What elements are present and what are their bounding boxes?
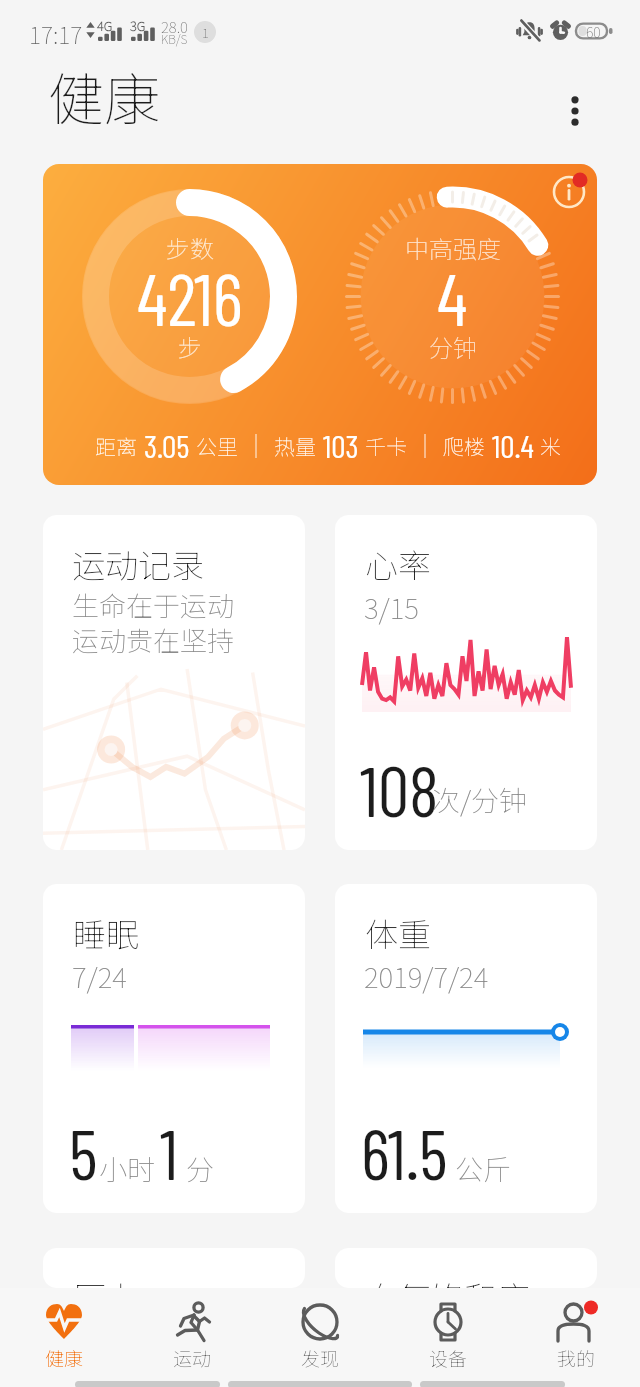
staticText: 次/分钟 bbox=[432, 779, 528, 820]
staticText: KB/S bbox=[161, 30, 188, 47]
staticText: 5 bbox=[69, 1110, 98, 1194]
staticText: 分钟 bbox=[429, 329, 477, 364]
staticText: 3.05 bbox=[144, 426, 190, 464]
button[interactable]: 运动记录 bbox=[43, 515, 305, 850]
button[interactable]: 运动 bbox=[128, 1288, 256, 1387]
staticText: 2019/7/24 bbox=[364, 956, 489, 997]
button[interactable]: 压力 bbox=[43, 1248, 305, 1288]
staticText: 米 bbox=[540, 431, 561, 461]
staticText: 我的 bbox=[557, 1344, 596, 1372]
staticText: 3/15 bbox=[364, 587, 419, 628]
staticText: 发现 bbox=[301, 1344, 340, 1372]
staticText: 4 bbox=[437, 253, 468, 341]
staticText: 压力 bbox=[73, 1273, 139, 1288]
staticText: 设备 bbox=[429, 1344, 468, 1372]
button[interactable]: Information bbox=[43, 164, 597, 485]
staticText: 3G bbox=[130, 16, 146, 35]
staticText: 步 bbox=[178, 329, 202, 364]
button[interactable]: 发现 bbox=[256, 1288, 384, 1387]
staticText: 61.5 bbox=[361, 1110, 448, 1194]
staticText: 小时 bbox=[99, 1148, 156, 1189]
staticText: 103 bbox=[323, 426, 359, 464]
button[interactable]: 血氧饱和度 bbox=[335, 1248, 597, 1288]
staticText: 千卡 bbox=[365, 431, 407, 461]
staticText: 体重 bbox=[365, 909, 431, 957]
staticText: 108 bbox=[360, 747, 439, 831]
staticText: 1 bbox=[160, 1110, 178, 1194]
staticText: 分 bbox=[186, 1148, 215, 1189]
button[interactable]: More options bbox=[548, 84, 602, 138]
button[interactable]: 设备 bbox=[384, 1288, 512, 1387]
button[interactable]: 睡眠 bbox=[43, 884, 305, 1213]
staticText: 7/24 bbox=[72, 956, 127, 997]
staticText: 步数 bbox=[166, 230, 214, 265]
staticText: 公斤 bbox=[455, 1148, 512, 1189]
staticText: 热量 bbox=[274, 431, 316, 461]
button[interactable]: Information bbox=[545, 164, 595, 214]
button[interactable]: 健康 bbox=[0, 1288, 128, 1387]
staticText: 健康 bbox=[45, 1344, 84, 1372]
button[interactable]: 我的 bbox=[512, 1288, 640, 1387]
staticText: 公里 bbox=[196, 431, 238, 461]
staticText: 1 bbox=[202, 23, 209, 42]
staticText: 健康 bbox=[48, 55, 160, 136]
staticText: 60 bbox=[586, 22, 601, 40]
staticText: 爬楼 bbox=[443, 431, 485, 461]
button[interactable]: 心率 bbox=[335, 515, 597, 850]
staticText: 17:17 bbox=[29, 17, 83, 50]
staticText: 心率 bbox=[365, 540, 431, 588]
staticText: 10.4 bbox=[492, 426, 534, 464]
staticText: 生命在于运动 运动贵在坚持 bbox=[72, 585, 234, 659]
button[interactable]: 体重 bbox=[335, 884, 597, 1213]
staticText: 运动 bbox=[173, 1344, 212, 1372]
staticText: 4216 bbox=[137, 253, 243, 341]
staticText: 睡眠 bbox=[73, 909, 139, 957]
staticText: 4G bbox=[97, 16, 113, 35]
staticText: 28.0 bbox=[161, 16, 188, 38]
staticText: 血氧饱和度 bbox=[365, 1273, 530, 1288]
staticText: 中高强度 bbox=[405, 230, 501, 265]
staticText: 距离 bbox=[95, 431, 137, 461]
staticText: 运动记录 bbox=[72, 540, 204, 588]
